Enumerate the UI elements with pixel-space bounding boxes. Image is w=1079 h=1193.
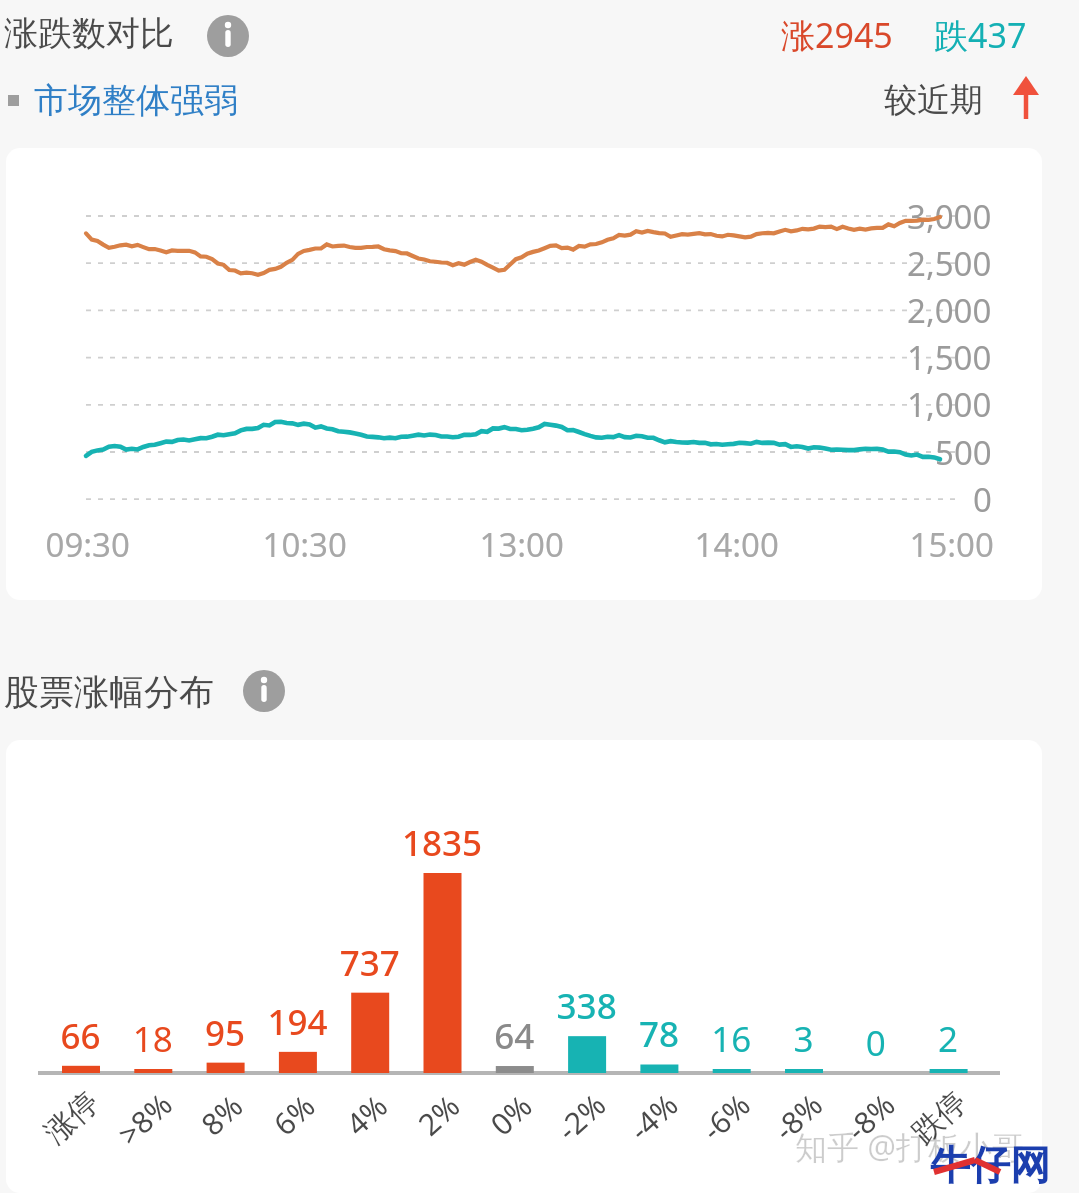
button[interactable]: 涨跌数对比 说明 (0, 0, 260, 58)
button[interactable]: 股票涨幅分布 说明 (0, 662, 300, 724)
button[interactable] (10, 78, 250, 126)
button[interactable]: 较近期 上升 (870, 74, 1070, 128)
button[interactable]: 股票涨幅分布 柱状图 (6, 740, 1042, 1193)
button[interactable]: 市场整体强弱 分时图 (6, 148, 1042, 600)
